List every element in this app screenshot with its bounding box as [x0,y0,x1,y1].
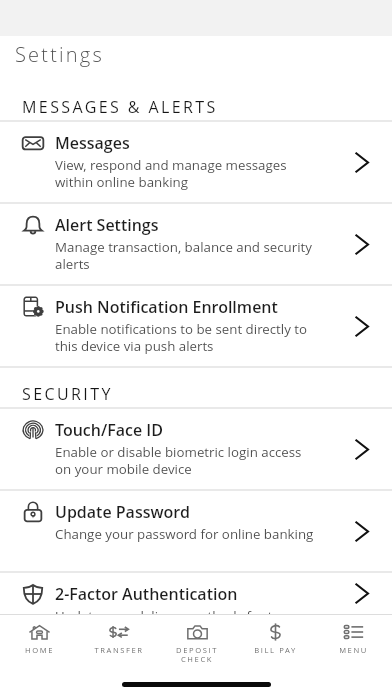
button[interactable]: BILL PAY [236,615,314,671]
staticText: Change your password for online banking [55,525,314,543]
staticText: 2-Factor Authentication [55,583,238,605]
button[interactable]: TRANSFER [79,615,158,671]
staticText: DEPOSIT CHECK [176,645,218,664]
staticText: Enable notifications to be sent directly… [55,320,308,355]
staticText: HOME [25,645,54,655]
staticText: BILL PAY [254,645,297,655]
staticText: Update Password [55,501,190,523]
button[interactable]: MENU [314,615,392,671]
staticText: SECURITY [22,383,113,405]
staticText: View, respond and manage messages within… [55,156,287,191]
button[interactable]: Alert Settings [0,204,392,286]
button[interactable]: Messages [0,122,392,204]
staticText: Enable or disable biometric login access… [55,443,302,478]
button[interactable]: Update Password [0,491,392,573]
staticText: MENU [339,645,368,655]
staticText: Update your delivery methods for two- fa… [55,607,296,614]
staticText: Push Notification Enrollment [55,296,278,318]
staticText: Manage transaction, balance and security… [55,238,312,273]
button[interactable]: Touch/Face ID [0,409,392,491]
staticText: Alert Settings [55,214,159,236]
staticText: Settings [15,41,104,68]
staticText: Touch/Face ID [55,419,163,441]
button[interactable]: DEPOSIT CHECK [158,615,236,671]
staticText: TRANSFER [94,645,144,655]
staticText: MESSAGES & ALERTS [22,96,218,118]
button[interactable]: Push Notification Enrollment [0,286,392,368]
button[interactable]: HOME [0,615,79,671]
button[interactable]: 2-Factor Authentication [0,573,392,614]
staticText: Messages [55,132,130,154]
